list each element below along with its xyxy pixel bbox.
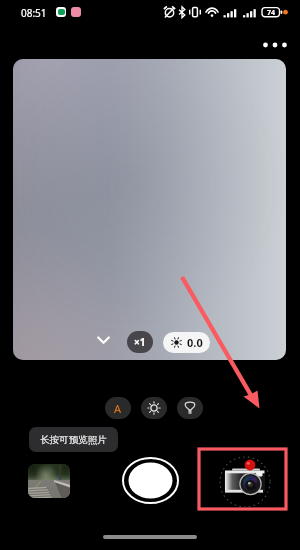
button[interactable]: Take photo	[122, 457, 179, 504]
button[interactable]: More options	[258, 35, 292, 55]
button[interactable]: Switch camera	[199, 449, 286, 509]
button[interactable]: Flash	[177, 397, 203, 419]
staticText: 0.0	[187, 335, 203, 350]
button[interactable]: Gallery	[28, 464, 70, 498]
button[interactable]: Brightness	[141, 397, 167, 419]
staticText: 长按可预览照片	[40, 434, 107, 446]
staticText: 74	[267, 8, 276, 17]
button[interactable]: 0.0	[163, 332, 210, 353]
button[interactable]: ×1	[127, 331, 153, 353]
button[interactable]: Expand zoom options	[90, 329, 116, 351]
button[interactable]: 长按可预览照片	[29, 427, 118, 452]
staticText: 08:51	[21, 6, 47, 20]
staticText: ×1	[134, 335, 146, 349]
staticText: A	[114, 401, 122, 416]
button[interactable]: Auto flash	[105, 397, 131, 419]
